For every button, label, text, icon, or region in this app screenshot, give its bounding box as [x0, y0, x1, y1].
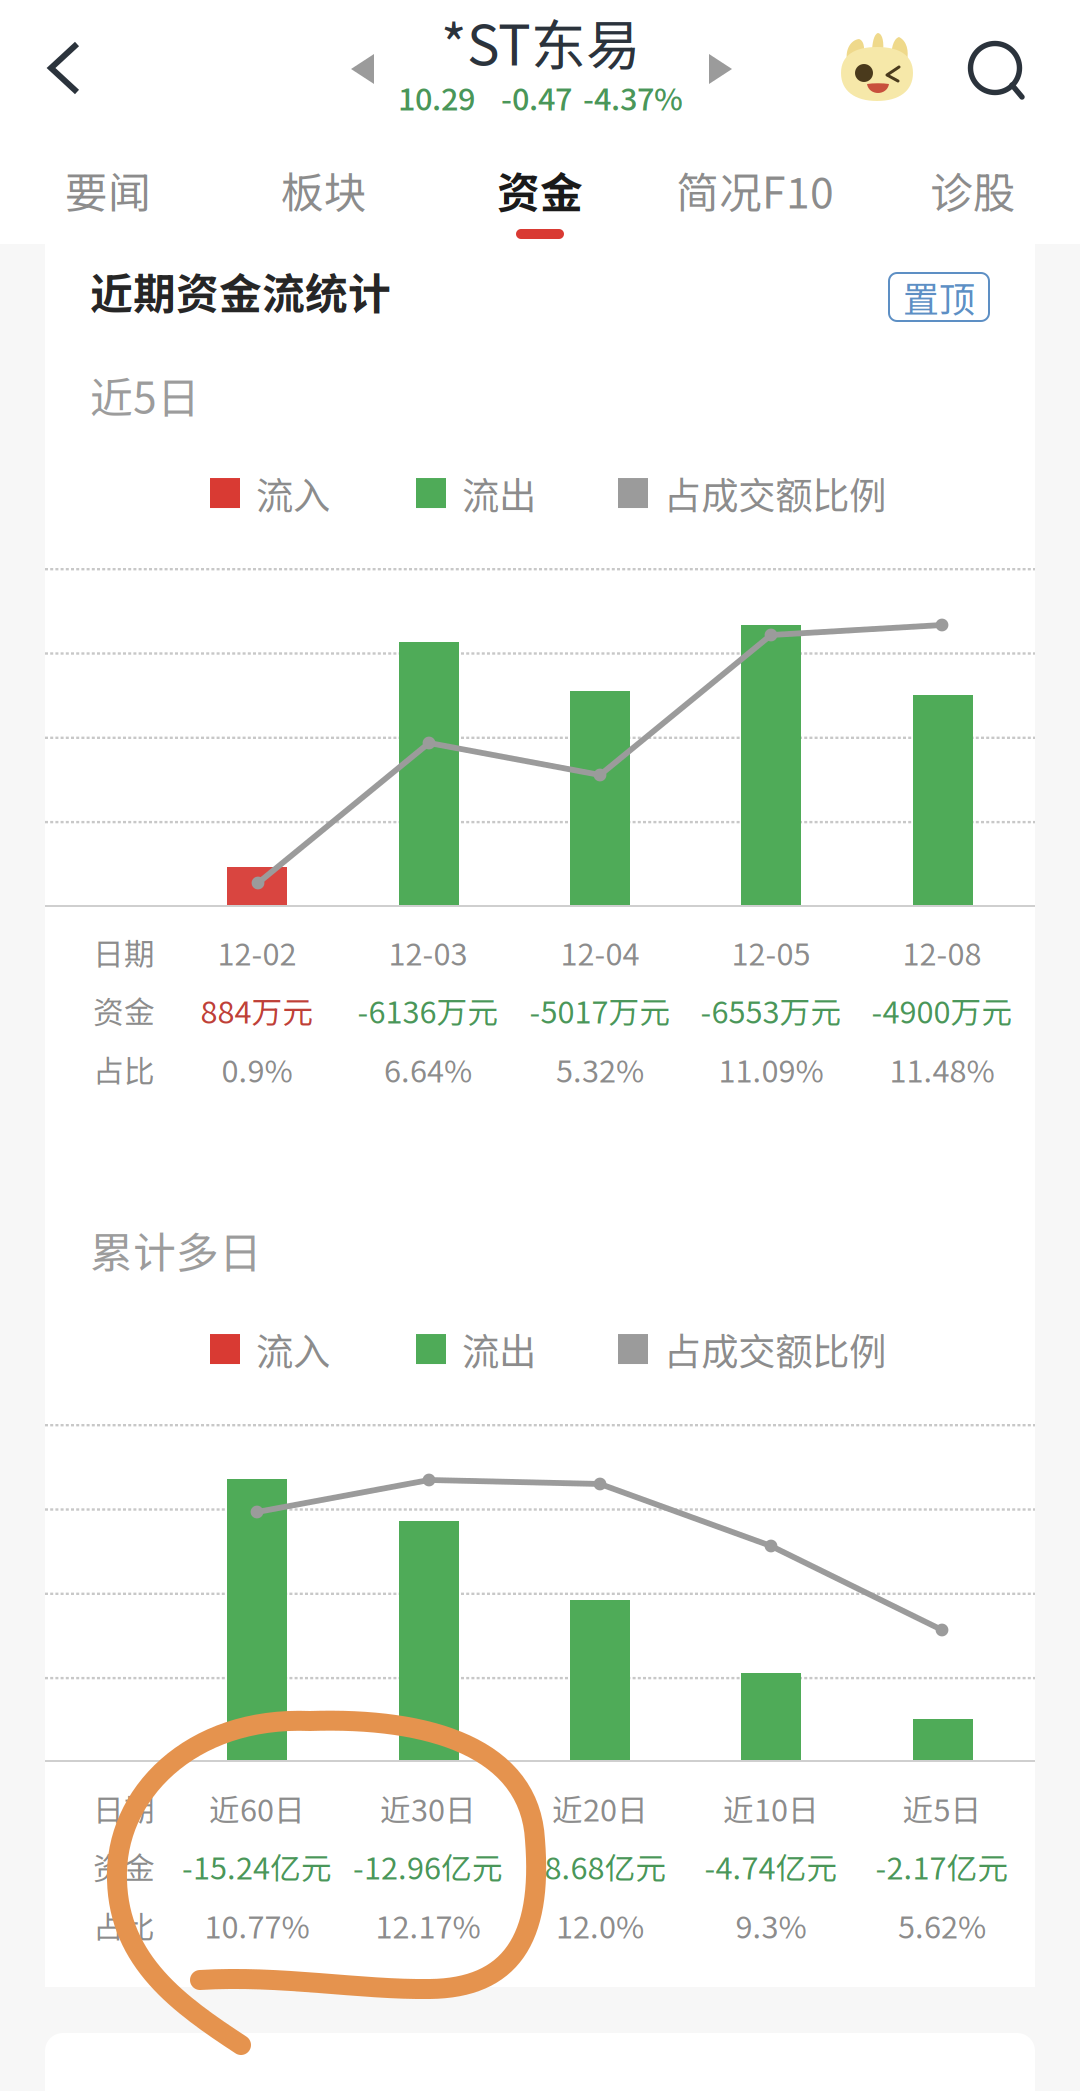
- staticText: 近5日: [90, 364, 200, 426]
- staticText: 12-05: [731, 930, 810, 974]
- button[interactable]: Previous stock: [337, 43, 389, 95]
- button[interactable]: 简况F10: [640, 151, 870, 229]
- staticText: 近60日: [209, 1786, 305, 1830]
- staticText: 9.3%: [735, 1903, 806, 1947]
- staticText: 12.17%: [375, 1903, 480, 1947]
- button[interactable]: Stock mascot: [832, 24, 922, 114]
- staticText: 要闻: [65, 159, 151, 221]
- staticText: 12.0%: [556, 1903, 644, 1947]
- staticText: 10.77%: [204, 1903, 309, 1947]
- staticText: 近20日: [552, 1786, 648, 1830]
- button[interactable]: 板块: [231, 151, 417, 229]
- staticText: 诊股: [930, 159, 1016, 221]
- button[interactable]: 要闻: [15, 151, 201, 229]
- staticText: 近30日: [380, 1786, 476, 1830]
- staticText: -8.68亿元: [533, 1844, 666, 1888]
- button[interactable]: 诊股: [880, 151, 1066, 229]
- staticText: -6136万元: [357, 988, 498, 1032]
- staticText: -5017万元: [529, 988, 670, 1032]
- button[interactable]: 资金: [447, 151, 633, 229]
- staticText: -4.37%: [583, 75, 683, 119]
- staticText: 累计多日: [90, 1219, 262, 1281]
- staticText: 流出: [462, 466, 536, 520]
- button[interactable]: Back: [16, 20, 112, 116]
- staticText: -12.96亿元: [353, 1844, 503, 1888]
- staticText: 0.9%: [221, 1047, 292, 1091]
- staticText: 12-02: [217, 930, 296, 974]
- staticText: 884万元: [200, 988, 313, 1032]
- staticText: -4900万元: [871, 988, 1012, 1032]
- staticText: 5.62%: [898, 1903, 986, 1947]
- staticText: 流出: [462, 1322, 536, 1376]
- staticText: 占成交额比例: [664, 466, 886, 520]
- staticText: 置顶: [903, 271, 975, 323]
- staticText: 日期: [93, 1786, 155, 1830]
- staticText: 资金: [93, 988, 155, 1032]
- staticText: 10.29: [398, 75, 475, 119]
- staticText: 近10日: [723, 1786, 819, 1830]
- staticText: 12-03: [388, 930, 467, 974]
- staticText: -2.17亿元: [875, 1844, 1008, 1888]
- staticText: 流入: [256, 466, 330, 520]
- staticText: 流入: [256, 1322, 330, 1376]
- staticText: -15.24亿元: [182, 1844, 332, 1888]
- button[interactable]: 置顶: [889, 273, 989, 321]
- staticText: 12-08: [902, 930, 981, 974]
- staticText: 近5日: [902, 1786, 981, 1830]
- staticText: 占成交额比例: [664, 1322, 886, 1376]
- staticText: -0.47: [501, 75, 572, 119]
- staticText: 板块: [281, 159, 367, 221]
- staticText: -6553万元: [700, 988, 841, 1032]
- staticText: 5.32%: [556, 1047, 644, 1091]
- staticText: 占比: [93, 1903, 155, 1947]
- staticText: 简况F10: [676, 159, 834, 221]
- staticText: 资金: [93, 1844, 155, 1888]
- staticText: 12-04: [560, 930, 639, 974]
- staticText: 11.09%: [718, 1047, 823, 1091]
- button[interactable]: Search: [948, 22, 1044, 118]
- button[interactable]: Next stock: [695, 43, 747, 95]
- staticText: *ST东易: [441, 2, 641, 81]
- staticText: -4.74亿元: [704, 1844, 837, 1888]
- staticText: 6.64%: [384, 1047, 472, 1091]
- staticText: 占比: [93, 1047, 155, 1091]
- staticText: 近期资金流统计: [90, 260, 391, 322]
- staticText: 日期: [93, 930, 155, 974]
- staticText: 资金: [497, 159, 583, 221]
- staticText: 11.48%: [889, 1047, 994, 1091]
